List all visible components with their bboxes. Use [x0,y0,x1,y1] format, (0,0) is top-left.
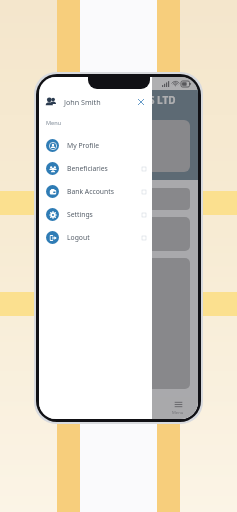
button[interactable]: My Profile [39,134,152,157]
staticText: John Smith [64,97,101,107]
staticText: My Profile [67,141,99,150]
button[interactable]: Beneficiaries [39,157,152,180]
staticText: Settings [67,210,93,219]
staticText: Menu [46,119,62,127]
staticText: S LTD [149,93,176,107]
button[interactable]: Logout [39,226,152,249]
button[interactable]: Menu [158,397,198,419]
staticText: Logout [67,233,90,242]
button[interactable]: Settings [39,203,152,226]
staticText: Bank Accounts [67,187,114,196]
staticText: Beneficiaries [67,164,108,173]
button[interactable]: Close menu [135,96,147,108]
staticText: Verified [57,238,82,247]
staticText: 9:45 [46,79,59,88]
button[interactable]: Bank Accounts [39,180,152,203]
staticText: Menu [172,410,184,416]
